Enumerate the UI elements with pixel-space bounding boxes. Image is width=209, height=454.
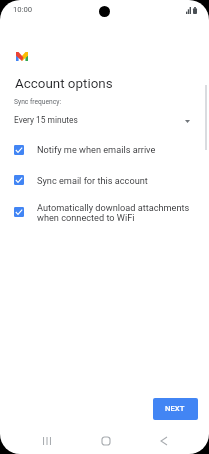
button[interactable]: Recent apps [26,428,67,454]
button[interactable]: Home [85,428,126,454]
staticText: Sync email for this account [37,175,148,186]
staticText: Every 15 minutes [14,115,78,125]
button[interactable]: Sync email for this account [0,169,209,190]
button[interactable]: Notify me when emails arrive [0,139,209,160]
button[interactable]: NEXT [153,398,198,420]
button[interactable]: Automatically download attachments when … [0,201,209,227]
staticText: Sync frequency: [14,98,62,106]
staticText: Account options [15,76,113,92]
button[interactable]: Back [143,428,184,454]
staticText: Notify me when emails arrive [37,144,156,155]
staticText: NEXT [165,404,185,413]
button[interactable]: Every 15 minutes [0,111,209,129]
staticText: Automatically download attachments when … [37,202,190,223]
staticText: 10:00 [13,5,33,14]
